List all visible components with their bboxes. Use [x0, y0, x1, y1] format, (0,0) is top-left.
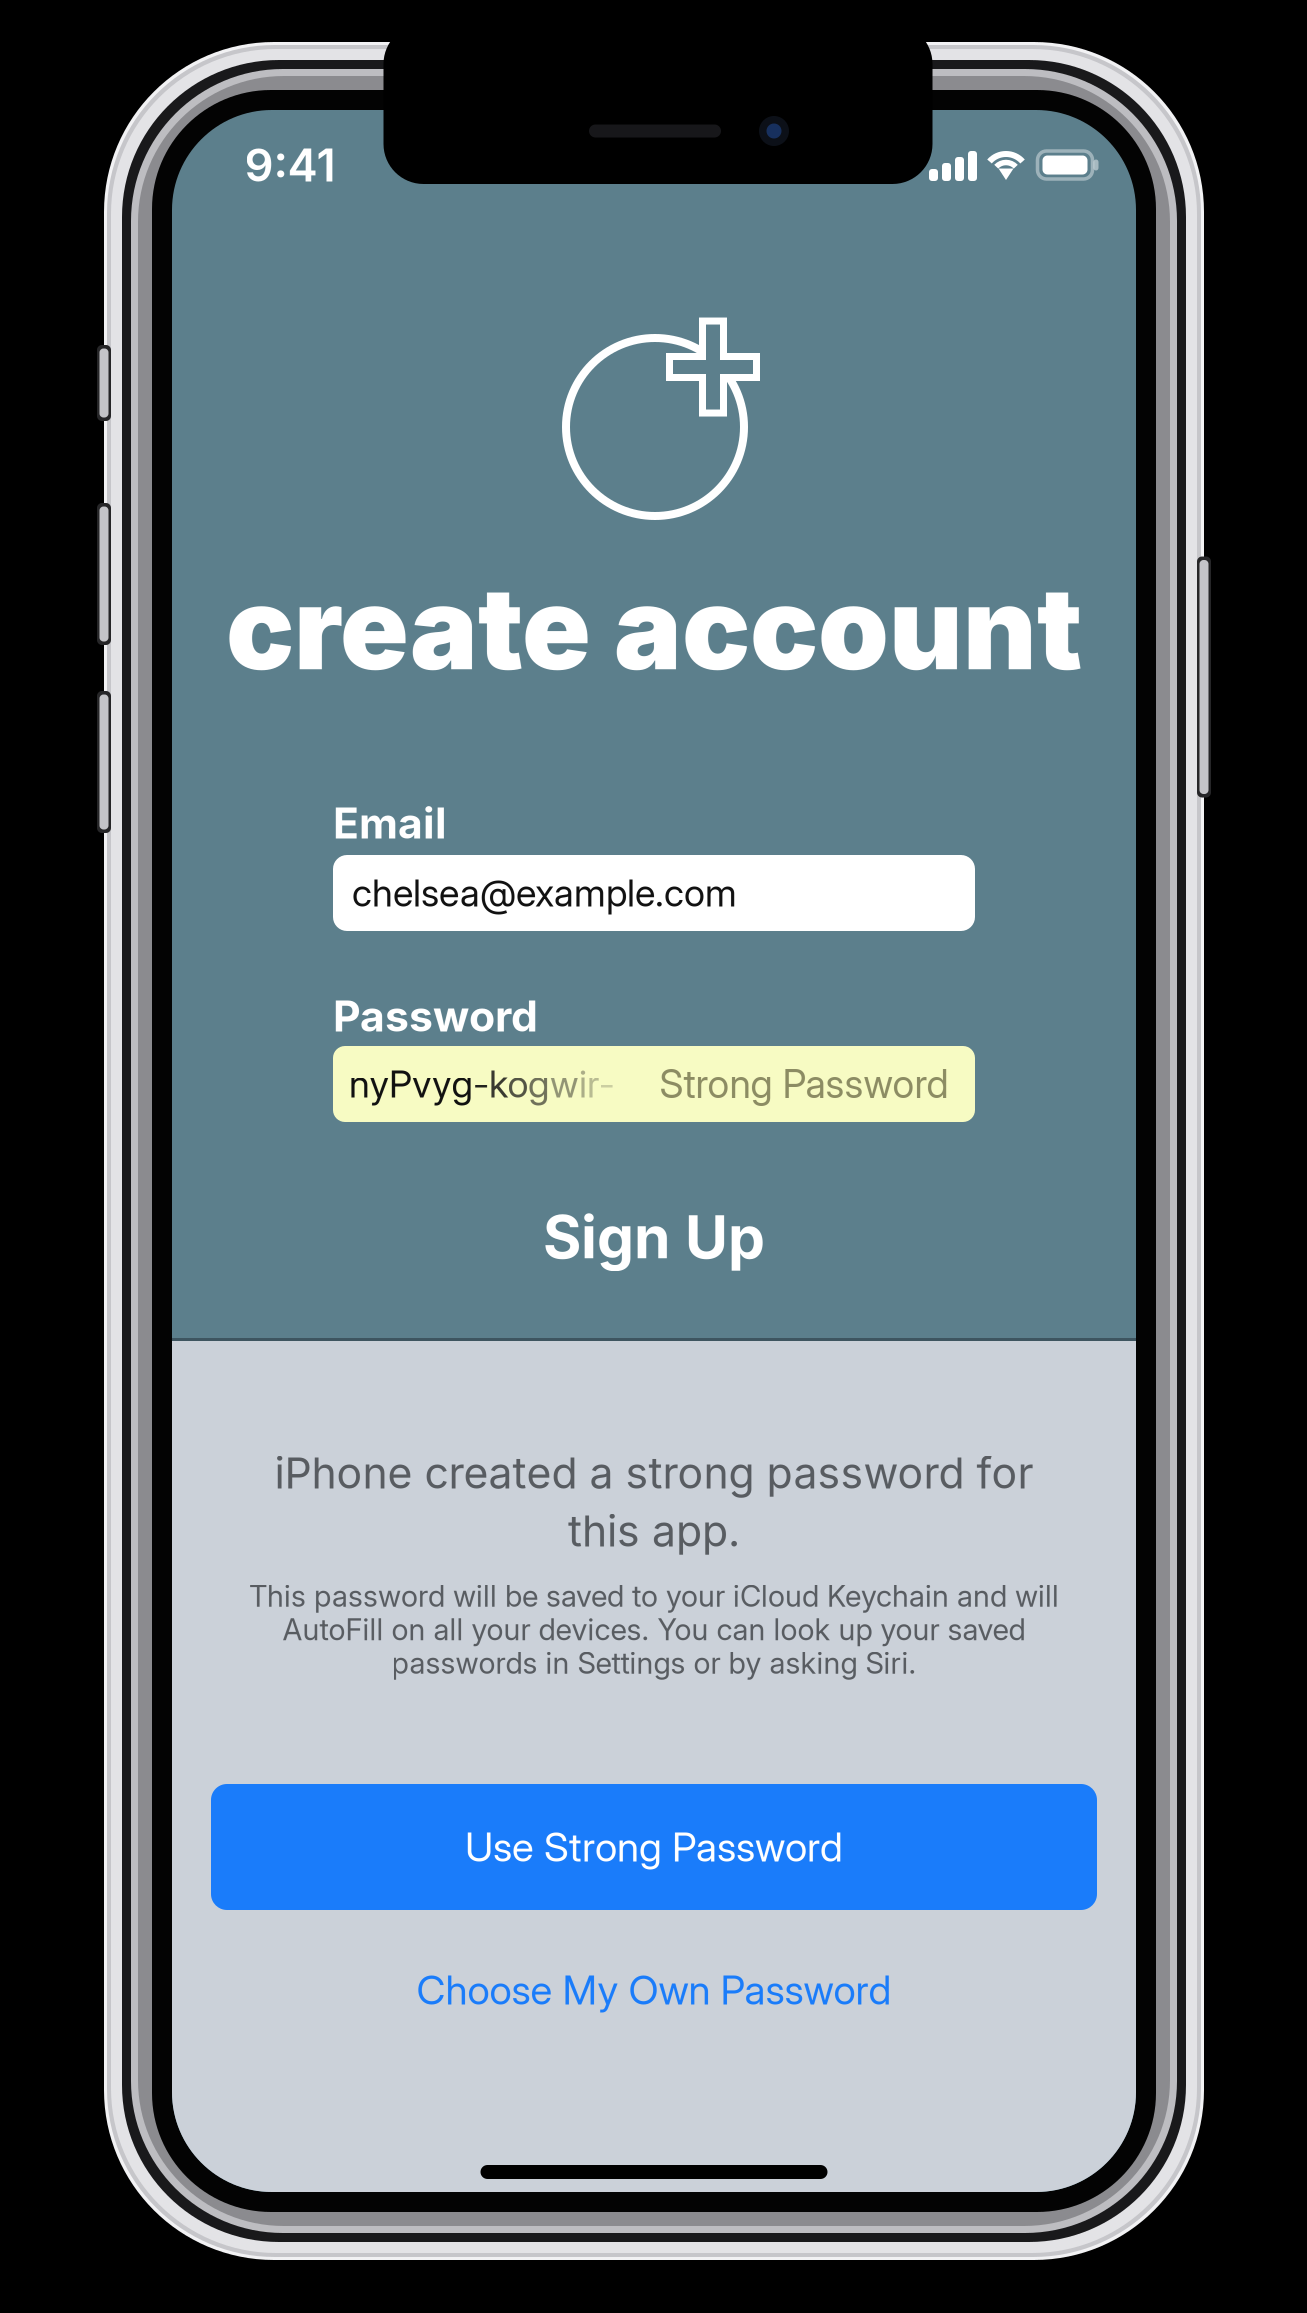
button[interactable]: Sign Up	[444, 1191, 864, 1283]
staticText: w	[550, 1061, 579, 1107]
staticText: Strong Password	[659, 1061, 948, 1107]
staticText: i	[579, 1061, 587, 1107]
staticText: r	[587, 1061, 599, 1107]
staticText: o	[507, 1061, 528, 1107]
staticText: passwords in Settings or by asking Siri.	[391, 1645, 916, 1681]
staticText: y	[369, 1061, 389, 1107]
staticText: Use Strong Password	[465, 1823, 843, 1871]
staticText: g	[528, 1061, 550, 1107]
staticText: 9:41	[244, 138, 335, 192]
staticText: P	[389, 1061, 412, 1107]
staticText: create account	[226, 559, 1082, 696]
staticText: This password will be saved to your iClo…	[249, 1578, 1059, 1614]
staticText: n	[349, 1061, 370, 1107]
staticText: k	[489, 1061, 508, 1107]
staticText: v	[412, 1061, 432, 1107]
staticText: this app.	[568, 1505, 740, 1557]
staticText: Password	[333, 990, 538, 1042]
staticText: g	[451, 1061, 473, 1107]
staticText: y	[432, 1061, 452, 1107]
staticText: AutoFill on all your devices. You can lo…	[282, 1612, 1025, 1647]
staticText: chelsea@example.com	[352, 870, 737, 916]
staticText: -	[473, 1061, 489, 1107]
staticText: Choose My Own Password	[416, 1966, 891, 2014]
button[interactable]: Use Strong Password	[211, 1784, 1097, 1910]
staticText: -	[598, 1061, 614, 1107]
button[interactable]: Choose My Own Password	[304, 1954, 1004, 2026]
staticText: Email	[333, 797, 447, 849]
staticText: Sign Up	[543, 1201, 765, 1272]
staticText: iPhone created a strong password for	[274, 1447, 1033, 1499]
